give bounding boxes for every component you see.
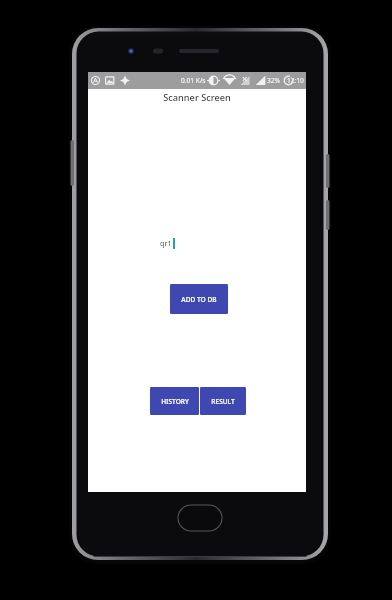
staticText: HISTORY bbox=[161, 397, 189, 406]
staticText: Scanner Screen bbox=[163, 91, 231, 104]
staticText: ADD TO DB bbox=[181, 295, 217, 304]
staticText: 32% bbox=[267, 76, 281, 85]
button[interactable]: ADD TO DB bbox=[170, 284, 228, 314]
button[interactable]: HISTORY bbox=[150, 387, 199, 415]
staticText: qr1 bbox=[160, 238, 172, 248]
staticText: RESULT bbox=[211, 397, 235, 406]
staticText: 12:10 bbox=[287, 76, 304, 85]
button[interactable]: qr1 bbox=[160, 236, 306, 250]
staticText: 0.01 K/s bbox=[181, 76, 206, 85]
button[interactable]: RESULT bbox=[200, 387, 246, 415]
